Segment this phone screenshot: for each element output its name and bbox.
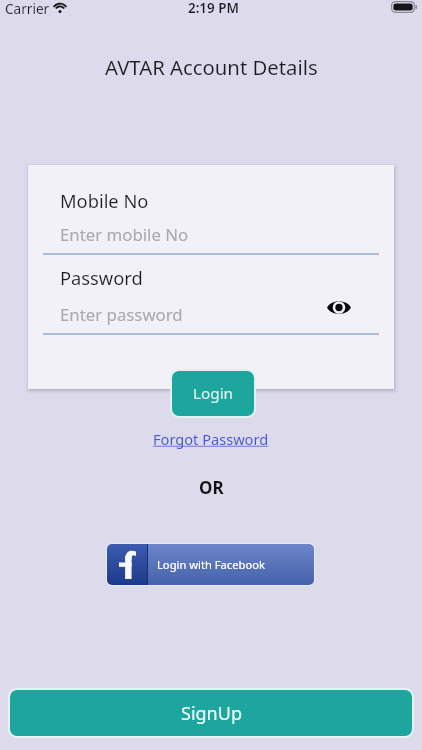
staticText: Forgot Password	[153, 429, 269, 449]
button[interactable]: Login with Facebook	[106, 543, 315, 586]
staticText: Carrier	[5, 0, 50, 18]
staticText: SignUp	[181, 701, 242, 726]
button[interactable]: Show password	[325, 295, 353, 319]
staticText: 2:19 PM	[188, 0, 239, 17]
staticText: Password	[60, 265, 143, 290]
staticText: Enter password	[60, 303, 183, 326]
button[interactable]: SignUp	[8, 688, 414, 738]
button[interactable]: Login	[170, 369, 256, 418]
button[interactable]: Forgot Password	[147, 426, 275, 452]
staticText: OR	[199, 476, 224, 499]
staticText: Login	[193, 383, 234, 404]
staticText: Login with Facebook	[157, 557, 265, 572]
staticText: AVTAR Account Details	[105, 53, 318, 81]
button[interactable]: Mobile No	[43, 179, 379, 255]
button[interactable]: Password	[43, 257, 379, 333]
staticText: Mobile No	[60, 188, 149, 213]
staticText: Enter mobile No	[60, 223, 189, 246]
